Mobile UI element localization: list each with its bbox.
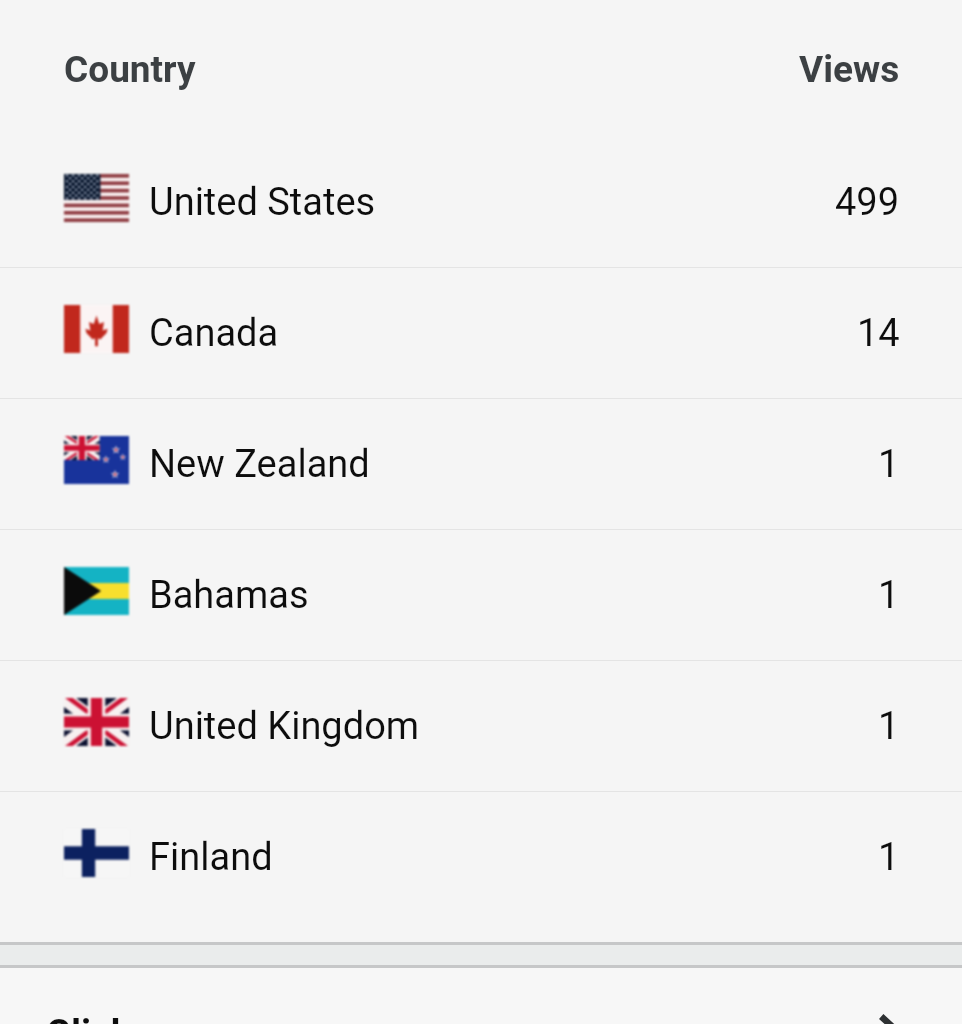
staticText: Finland (149, 835, 273, 880)
staticText: 1 (878, 442, 900, 487)
button[interactable]: Open clicks (858, 1007, 922, 1024)
button[interactable]: New Zealand (0, 399, 962, 529)
staticText: Country (64, 48, 196, 91)
button[interactable]: Canada (0, 268, 962, 398)
staticText: Bahamas (149, 573, 309, 618)
staticText: 1 (878, 704, 900, 749)
staticText: 1 (878, 573, 900, 618)
button[interactable]: Clicks (0, 968, 962, 1024)
button[interactable]: United States (0, 137, 962, 267)
staticText: Views (799, 48, 900, 91)
button[interactable]: Bahamas (0, 530, 962, 660)
staticText: 499 (835, 180, 900, 225)
staticText: United Kingdom (149, 704, 420, 749)
staticText: Clicks (46, 1012, 151, 1024)
staticText: United States (149, 180, 376, 225)
staticText: 14 (857, 311, 900, 356)
button[interactable]: United Kingdom (0, 661, 962, 791)
staticText: New Zealand (149, 442, 370, 487)
button[interactable]: Finland (0, 792, 962, 922)
staticText: 1 (878, 835, 900, 880)
staticText: Canada (149, 311, 279, 356)
